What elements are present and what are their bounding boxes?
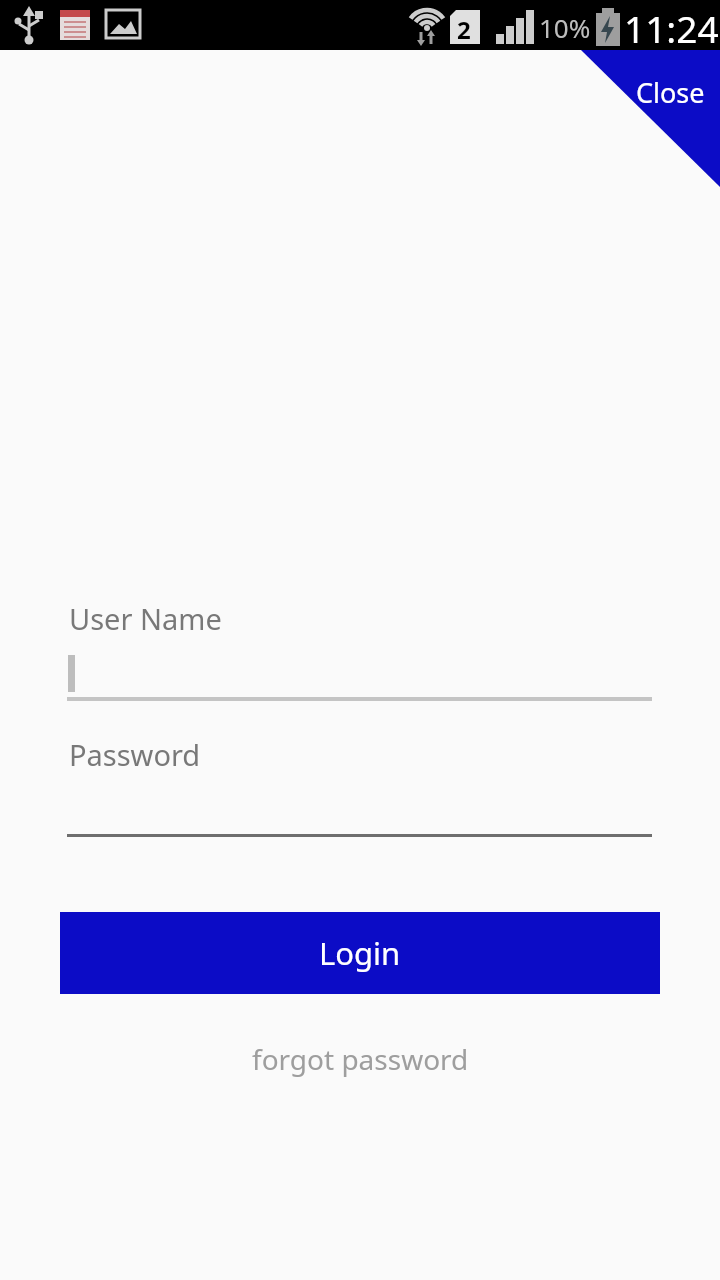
button[interactable]: forgot password xyxy=(252,1040,469,1078)
button[interactable] xyxy=(600,50,720,170)
staticText: User Name xyxy=(69,599,222,638)
staticText: 11:24 xyxy=(624,3,719,53)
staticText: Password xyxy=(69,735,201,774)
staticText: 2 xyxy=(457,13,471,46)
staticText: Close xyxy=(636,74,705,111)
staticText: 10% xyxy=(539,10,591,45)
button[interactable] xyxy=(67,648,652,701)
staticText: forgot password xyxy=(252,1040,469,1078)
staticText: Login xyxy=(319,932,401,974)
button[interactable] xyxy=(67,784,652,837)
button[interactable]: Login xyxy=(60,912,660,994)
